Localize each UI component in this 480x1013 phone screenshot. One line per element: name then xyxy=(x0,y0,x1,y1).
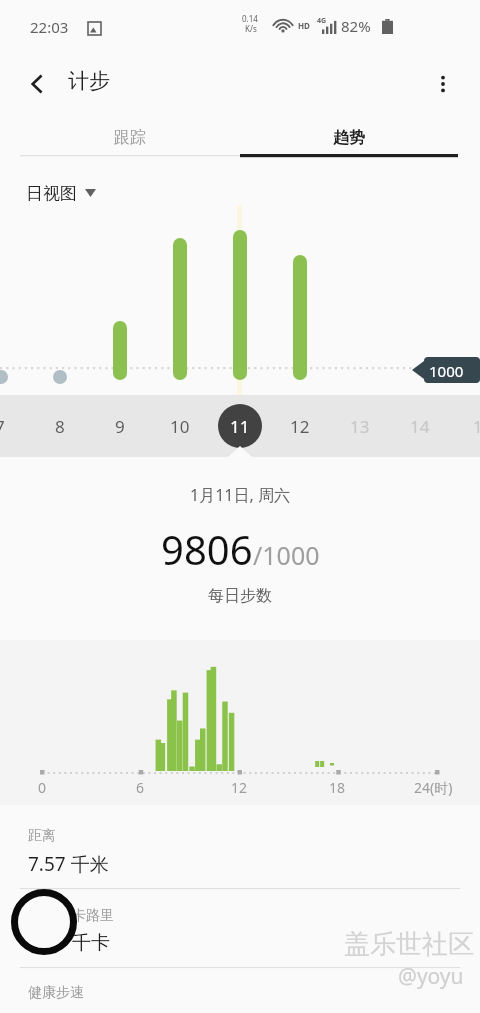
staticText: 7 xyxy=(0,415,5,438)
staticText: @yoyu xyxy=(398,962,464,991)
button[interactable]: 14 xyxy=(392,395,448,457)
button[interactable]: More options xyxy=(420,61,466,107)
staticText: 8 xyxy=(55,415,65,438)
button[interactable]: 距离 xyxy=(0,805,480,888)
staticText: 0 xyxy=(38,778,47,797)
button[interactable]: 趋势 xyxy=(240,118,458,158)
button[interactable]: 10 xyxy=(152,395,208,457)
staticText: 计步 xyxy=(68,68,110,94)
button[interactable]: 日视图 xyxy=(26,176,96,210)
staticText: 6 xyxy=(136,778,145,797)
button[interactable]: Back xyxy=(14,61,60,107)
staticText: 10 xyxy=(170,415,190,438)
button[interactable]: 1 xyxy=(450,395,480,457)
staticText: 9 xyxy=(115,415,125,438)
staticText: 7.57 千米 xyxy=(28,851,109,877)
button[interactable]: 7 xyxy=(0,395,28,457)
staticText: 距离 xyxy=(28,827,56,845)
staticText: 82% xyxy=(341,16,371,36)
staticText: 9806 xyxy=(161,522,253,576)
staticText: 每日步数 xyxy=(208,586,272,606)
staticText: 22:03 xyxy=(30,17,69,37)
staticText: 12 xyxy=(290,415,310,438)
staticText: 11 xyxy=(230,415,250,438)
button[interactable]: 跟踪 xyxy=(20,118,240,158)
staticText: 健康步速 xyxy=(28,984,84,1002)
staticText: 4G xyxy=(317,16,327,26)
button[interactable]: 13 xyxy=(332,395,388,457)
staticText: K/s xyxy=(245,23,257,34)
staticText: 卡路里 xyxy=(72,907,114,925)
staticText: 趋势 xyxy=(333,128,365,148)
button[interactable]: 卡路里 xyxy=(0,889,480,967)
staticText: 跟踪 xyxy=(114,128,146,148)
staticText: 0.14 xyxy=(242,13,258,24)
staticText: 1000 xyxy=(429,361,464,381)
button[interactable]: 8 xyxy=(32,395,88,457)
button[interactable]: 9 xyxy=(92,395,148,457)
staticText: 千卡 xyxy=(72,931,110,955)
button[interactable]: 健康步速 xyxy=(0,968,480,1013)
staticText: 1 xyxy=(473,415,480,438)
staticText: 1月11日, 周六 xyxy=(190,484,290,506)
staticText: 盖乐世社区 xyxy=(344,928,474,961)
button[interactable]: 12 xyxy=(272,395,328,457)
staticText: 24(时) xyxy=(414,778,453,797)
staticText: 14 xyxy=(410,415,430,438)
button[interactable]: 11 xyxy=(212,395,268,457)
staticText: 13 xyxy=(350,415,370,438)
staticText: 日视图 xyxy=(26,183,77,204)
staticText: 18 xyxy=(329,778,346,797)
staticText: HD xyxy=(298,20,310,31)
staticText: /1000 xyxy=(253,538,320,572)
staticText: 12 xyxy=(231,778,248,797)
